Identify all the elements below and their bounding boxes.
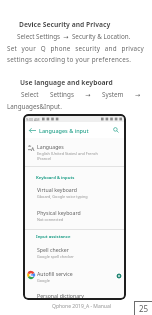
staticText: Autofill service bbox=[37, 270, 73, 277]
button[interactable]: Physical keyboard bbox=[23, 208, 126, 222]
staticText: Keyboard & inputs bbox=[36, 175, 75, 181]
staticText: Spell checker bbox=[37, 246, 69, 253]
staticText: 9:00 AM bbox=[26, 117, 40, 122]
button[interactable]: Autofill service bbox=[23, 269, 126, 283]
staticText: Languages bbox=[37, 143, 64, 150]
button[interactable]: Back bbox=[27, 125, 37, 135]
staticText: Gboard, Google voice typing bbox=[37, 194, 88, 199]
staticText: Google bbox=[37, 278, 50, 283]
staticText: Google spell checker bbox=[37, 254, 74, 259]
staticText: Device Security and Privacy bbox=[19, 20, 111, 29]
staticText: Not connected bbox=[37, 217, 64, 222]
staticText: Personal dictionary bbox=[37, 292, 84, 299]
button[interactable]: Spell checker bbox=[23, 245, 126, 259]
staticText: Virtual keyboard bbox=[37, 186, 77, 193]
staticText: Set your Q phone security and privacy se… bbox=[7, 44, 144, 64]
button[interactable]: Languages bbox=[23, 142, 126, 161]
staticText: English (United States) and French (Fran… bbox=[37, 151, 98, 161]
staticText: 25 bbox=[139, 303, 149, 314]
button[interactable]: Personal dictionary bbox=[23, 291, 126, 300]
staticText: Physical keyboard bbox=[37, 209, 81, 216]
button[interactable]: Virtual keyboard bbox=[23, 185, 126, 199]
staticText: Select Settings → System → bbox=[21, 90, 141, 99]
staticText: Qphone 2019_A - Manual bbox=[52, 303, 111, 310]
staticText: Input assistance bbox=[36, 234, 71, 240]
staticText: Select Settings → Security & Location. bbox=[17, 32, 131, 41]
button[interactable]: Search bbox=[111, 125, 121, 135]
button[interactable]: Autofill settings bbox=[114, 271, 123, 280]
staticText: Languages&Input. bbox=[7, 102, 62, 111]
staticText: Languages & input bbox=[39, 127, 89, 134]
staticText: Use language and keyboard bbox=[20, 78, 113, 87]
